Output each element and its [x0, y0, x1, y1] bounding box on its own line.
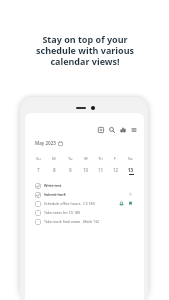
staticText: Schedule office hours - CS 180	[44, 201, 95, 206]
staticText: 7	[37, 167, 40, 173]
staticText: Stay on top of your schedule with variou…	[35, 33, 135, 67]
button[interactable]: Flag	[128, 192, 133, 197]
button[interactable]: Search	[109, 127, 115, 133]
button[interactable]: Submit hw 8	[25, 190, 144, 199]
button[interactable]: Statistics	[120, 127, 126, 133]
staticText: F	[114, 156, 117, 161]
staticText: Write test	[44, 183, 62, 188]
staticText: 9	[69, 167, 72, 173]
staticText: W	[84, 156, 88, 161]
staticText: Sa	[128, 156, 133, 161]
staticText: Submit hw 8	[44, 192, 66, 197]
button[interactable]: Write test	[25, 181, 144, 190]
staticText: 11	[98, 167, 104, 173]
button[interactable]: Flag	[128, 201, 133, 206]
staticText: Take notes for CS 180	[44, 210, 81, 215]
staticText: 10	[83, 167, 89, 173]
staticText: Tu	[68, 156, 73, 161]
staticText: Take mock final exam - Math 132	[44, 219, 100, 224]
staticText: 8	[53, 167, 56, 173]
button[interactable]: Reminder	[119, 201, 124, 206]
button[interactable]: Take notes for CS 180	[25, 208, 144, 217]
button[interactable]: Take mock final exam - Math 132	[25, 217, 144, 226]
button[interactable]: Add	[98, 127, 104, 133]
staticText: 12	[113, 167, 119, 173]
staticText: May 2023	[35, 140, 56, 146]
staticText: M	[52, 156, 56, 161]
button[interactable]: Schedule office hours - CS 180	[25, 199, 144, 208]
button[interactable]: Menu	[131, 127, 137, 133]
staticText: 13	[128, 167, 134, 173]
staticText: Th	[98, 156, 103, 161]
staticText: Su	[36, 156, 41, 161]
